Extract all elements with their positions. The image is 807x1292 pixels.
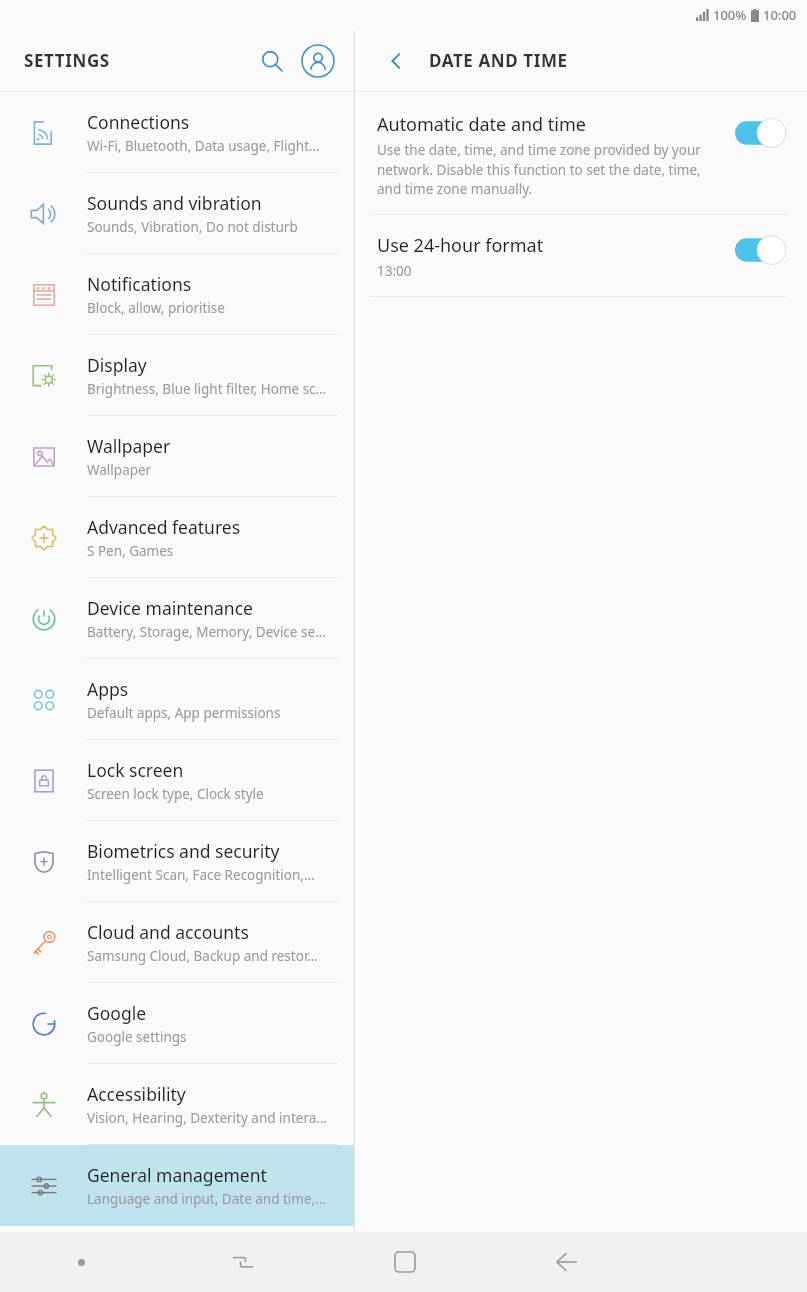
button[interactable]: Back <box>375 40 417 82</box>
button[interactable]: Wallpaper <box>0 416 354 497</box>
button[interactable]: Lock screen <box>0 740 354 821</box>
staticText: Samsung Cloud, Backup and restor… <box>87 947 318 965</box>
staticText: Lock screen <box>87 758 184 782</box>
button[interactable]: Display <box>0 335 354 416</box>
staticText: Wi-Fi, Bluetooth, Data usage, Flight… <box>87 137 320 155</box>
button[interactable]: Notifications <box>0 254 354 335</box>
staticText: Vision, Hearing, Dexterity and intera… <box>87 1109 327 1127</box>
button[interactable]: General management <box>0 1145 354 1226</box>
staticText: Sounds and vibration <box>87 191 262 215</box>
button[interactable]: Apps <box>0 659 354 740</box>
staticText: Apps <box>87 677 129 701</box>
staticText: Automatic date and time <box>377 112 586 137</box>
staticText: Biometrics and security <box>87 839 280 863</box>
button[interactable]: Cloud and accounts <box>0 902 354 983</box>
staticText: 100% <box>713 6 747 24</box>
staticText: Accessibility <box>87 1082 186 1106</box>
staticText: Wallpaper <box>87 434 171 458</box>
button[interactable]: Search <box>250 39 294 83</box>
button[interactable]: Google <box>0 983 354 1064</box>
staticText: Intelligent Scan, Face Recognition,… <box>87 866 315 884</box>
staticText: Google settings <box>87 1028 187 1046</box>
staticText: Block, allow, prioritise <box>87 299 225 317</box>
button[interactable]: Accessibility <box>0 1064 354 1145</box>
staticText: 13:00 <box>377 262 412 280</box>
staticText: Connections <box>87 110 190 134</box>
staticText: Brightness, Blue light filter, Home sc… <box>87 380 327 398</box>
staticText: DATE AND TIME <box>429 49 568 72</box>
staticText: Notifications <box>87 272 192 296</box>
button[interactable]: Automatic date and time <box>355 92 807 214</box>
staticText: Use 24-hour format <box>377 233 544 258</box>
staticText: Screen lock type, Clock style <box>87 785 264 803</box>
staticText: Battery, Storage, Memory, Device se… <box>87 623 326 641</box>
button[interactable]: Home <box>324 1232 485 1292</box>
button[interactable]: Toggle <box>735 118 787 148</box>
button[interactable]: Toggle <box>735 235 787 265</box>
button[interactable]: Advanced features <box>0 497 354 578</box>
button[interactable]: Biometrics and security <box>0 821 354 902</box>
staticText: Use the date, time, and time zone provid… <box>377 141 721 198</box>
staticText: SETTINGS <box>24 49 110 72</box>
staticText: Display <box>87 353 147 377</box>
staticText: Device maintenance <box>87 596 253 620</box>
staticText: Google <box>87 1001 147 1025</box>
staticText: Sounds, Vibration, Do not disturb <box>87 218 298 236</box>
button[interactable]: Back <box>485 1232 646 1292</box>
button[interactable]: Sounds and vibration <box>0 173 354 254</box>
staticText: Default apps, App permissions <box>87 704 281 722</box>
staticText: 10:00 <box>763 6 797 24</box>
staticText: S Pen, Games <box>87 542 174 560</box>
button[interactable]: Device maintenance <box>0 578 354 659</box>
staticText: Language and input, Date and time,… <box>87 1190 326 1208</box>
staticText: General management <box>87 1163 267 1187</box>
button[interactable]: Use 24-hour format <box>355 215 807 296</box>
button[interactable]: Connections <box>0 92 354 173</box>
staticText: Wallpaper <box>87 461 152 479</box>
staticText: Advanced features <box>87 515 241 539</box>
staticText: Cloud and accounts <box>87 920 249 944</box>
button[interactable]: Account <box>296 39 340 83</box>
button[interactable]: Recents <box>162 1232 324 1292</box>
